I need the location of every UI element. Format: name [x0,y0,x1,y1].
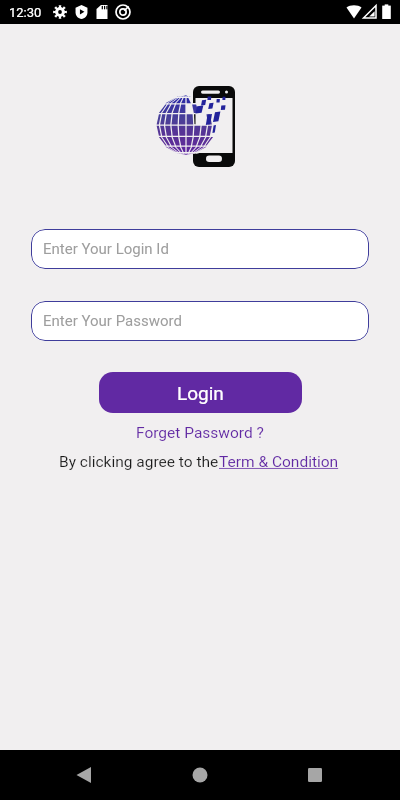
button[interactable]: Forget Password ? [130,422,270,444]
staticText: Enter Your Login Id [43,240,169,258]
staticText: 12:30 [9,5,42,20]
staticText: Enter Your Password [43,312,182,330]
button[interactable]: Home [176,751,224,799]
button[interactable]: Login [99,372,302,413]
button[interactable]: Enter Your Login Id [31,229,369,269]
staticText: Forget Password ? [136,424,264,442]
button[interactable]: Term & Condition [219,453,342,471]
staticText: Login [177,382,224,404]
button[interactable]: Back [60,751,108,799]
staticText: Term & Condition [219,453,342,471]
staticText: By clicking agree to the [59,453,219,471]
button[interactable]: Recent apps [291,751,339,799]
button[interactable]: Enter Your Password [31,301,369,341]
